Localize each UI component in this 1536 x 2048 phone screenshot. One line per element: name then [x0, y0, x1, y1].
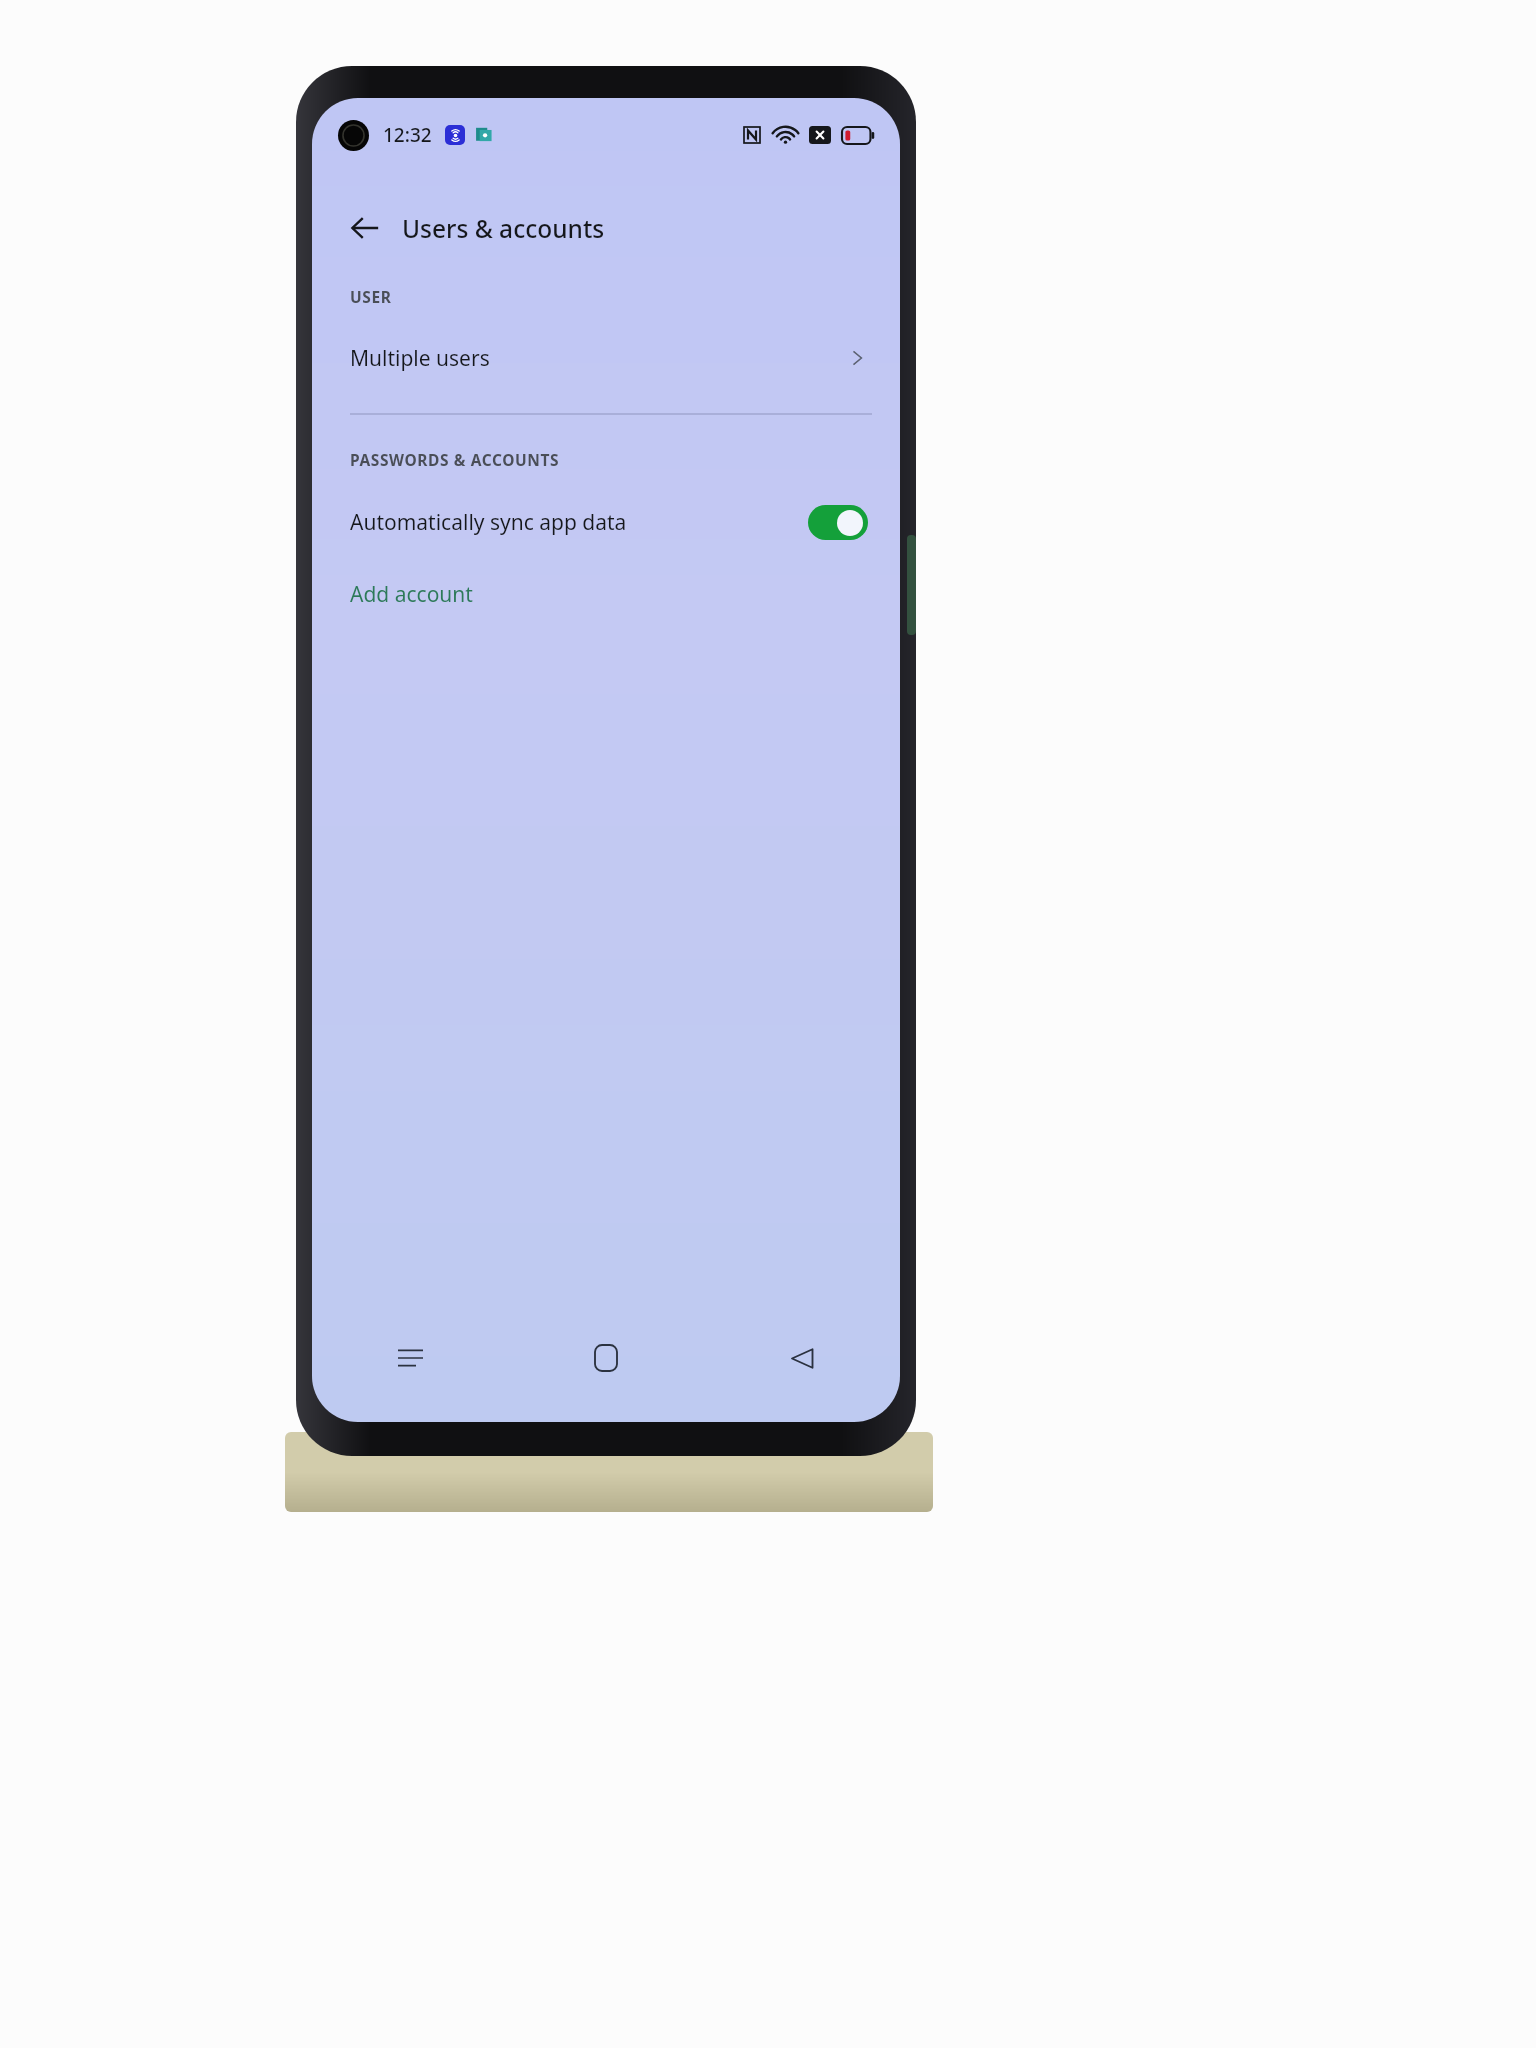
staticText: Automatically sync app data [350, 508, 627, 537]
button[interactable]: Automatically sync app data [312, 492, 900, 552]
staticText: Multiple users [350, 344, 490, 373]
staticText: 12:32 [383, 122, 432, 148]
staticText: Add account [350, 580, 473, 609]
staticText: PASSWORDS & ACCOUNTS [350, 449, 560, 470]
button[interactable]: Add account [312, 566, 900, 622]
button[interactable]: Automatically sync app data [808, 505, 868, 540]
button[interactable]: Back [704, 1328, 900, 1388]
button[interactable]: Recent apps [312, 1328, 508, 1388]
button[interactable]: Multiple users [312, 329, 900, 387]
button[interactable]: Home [508, 1328, 704, 1388]
staticText: USER [350, 286, 392, 307]
button[interactable]: Back [340, 203, 390, 253]
staticText: Users & accounts [402, 212, 605, 245]
